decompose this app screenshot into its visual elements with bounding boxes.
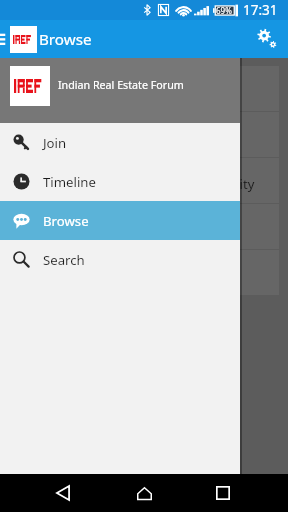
staticText: Browse — [43, 212, 89, 230]
staticText: Search — [43, 251, 85, 269]
button[interactable]: New residential property projects in cit… — [0, 158, 279, 203]
button[interactable]: Timeline — [0, 162, 240, 201]
button[interactable] — [0, 66, 279, 111]
staticText: New residential property projects in cit… — [12, 175, 255, 193]
button[interactable]: Home — [127, 476, 161, 510]
staticText: 17:31 — [243, 1, 278, 19]
button[interactable]: Open navigation drawer — [0, 20, 16, 58]
button[interactable]: Settings — [252, 24, 282, 54]
button[interactable]: Search — [0, 240, 240, 279]
button[interactable]: Recent apps — [206, 476, 240, 510]
button[interactable]: Browse — [0, 201, 240, 240]
staticText: Browse — [39, 29, 92, 50]
button[interactable]: Back — [46, 476, 80, 510]
staticText: Join — [43, 134, 67, 152]
staticText: Indian Real Estate Forum — [58, 78, 184, 93]
button[interactable] — [0, 112, 279, 157]
button[interactable] — [0, 204, 279, 249]
button[interactable] — [0, 250, 279, 295]
staticText: Timeline — [43, 173, 96, 191]
button[interactable]: Join — [0, 123, 240, 162]
staticText: 69% — [216, 5, 232, 16]
